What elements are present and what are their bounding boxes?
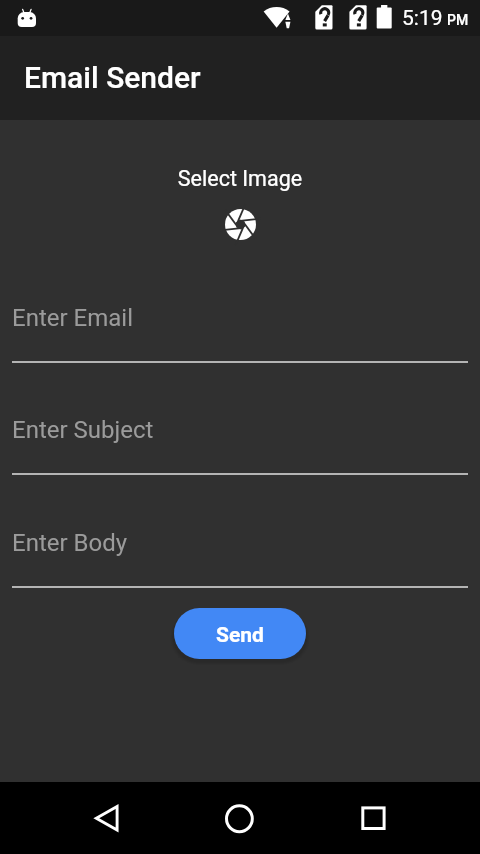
staticText: Enter Body [12, 529, 128, 557]
staticText: Email Sender [24, 60, 201, 95]
button[interactable]: Home [216, 794, 264, 842]
staticText: PM [447, 12, 469, 28]
button[interactable]: Select Image [220, 204, 260, 244]
button[interactable]: Enter Email [0, 304, 480, 364]
button[interactable]: Back [83, 794, 131, 842]
button[interactable]: Recent apps [350, 794, 398, 842]
staticText: Enter Subject [12, 416, 154, 444]
button[interactable]: Enter Subject [0, 416, 480, 476]
button[interactable]: Enter Body [0, 529, 480, 589]
staticText: Select Image [0, 166, 480, 191]
staticText: 5:19 [402, 6, 443, 31]
staticText: Enter Email [12, 304, 133, 332]
staticText: Send [216, 623, 264, 648]
button[interactable]: Send [174, 608, 306, 659]
